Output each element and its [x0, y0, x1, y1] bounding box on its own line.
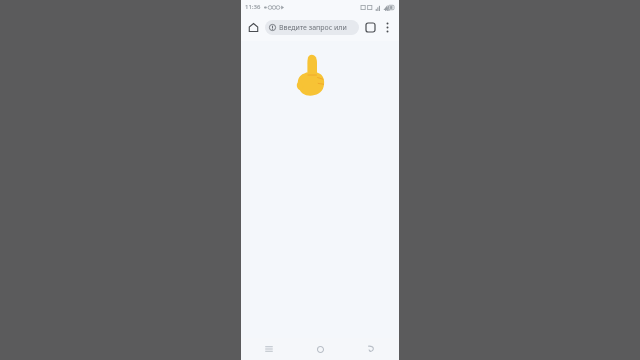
button[interactable]: Tabs: [362, 19, 379, 36]
button[interactable]: More options: [380, 20, 395, 35]
button[interactable]: Home: [245, 19, 262, 36]
staticText: 11:36: [245, 3, 261, 11]
button[interactable]: Введите запрос или UR: [265, 20, 359, 35]
button[interactable]: Home: [310, 339, 330, 359]
button[interactable]: Recent apps: [259, 339, 279, 359]
staticText: Введите запрос или UR: [279, 23, 354, 33]
button[interactable]: Back: [361, 339, 381, 359]
